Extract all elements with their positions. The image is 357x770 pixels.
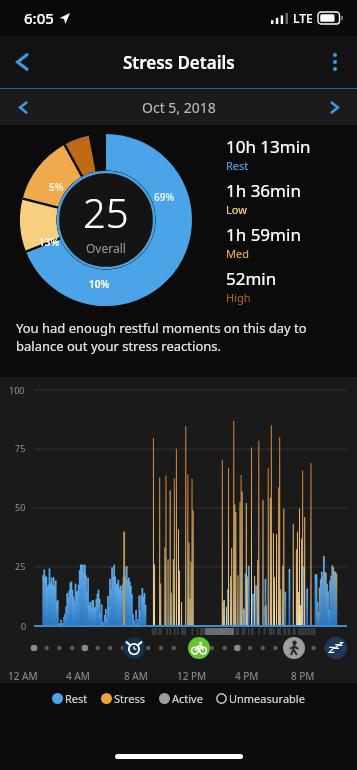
button[interactable]: Stress: [101, 691, 146, 706]
button[interactable]: Unmeasurable: [216, 691, 305, 706]
staticText: 50: [15, 501, 26, 513]
staticText: 13%: [39, 235, 60, 249]
staticText: Oct 5, 2018: [142, 98, 216, 117]
staticText: 25: [83, 185, 129, 239]
staticText: 12 AM: [8, 669, 38, 683]
button[interactable]: More options: [313, 36, 357, 88]
staticText: 8 PM: [291, 669, 315, 683]
staticText: 69%: [154, 190, 175, 204]
staticText: High: [226, 290, 251, 305]
staticText: 4 PM: [235, 669, 259, 683]
button[interactable]: Walking: [283, 637, 305, 659]
staticText: Low: [226, 202, 247, 217]
button[interactable]: Previous day: [0, 89, 46, 125]
staticText: 5%: [49, 180, 64, 194]
button[interactable]: Cycling: [188, 637, 210, 659]
button[interactable]: Next day: [311, 89, 357, 125]
staticText: 25: [15, 560, 26, 572]
staticText: 1h 59min: [226, 223, 301, 246]
staticText: Rest: [65, 691, 88, 706]
staticText: LTE: [293, 10, 313, 26]
staticText: 10h 13min: [226, 135, 311, 158]
staticText: 0: [21, 620, 27, 632]
staticText: 100: [9, 384, 25, 396]
staticText: 10%: [89, 277, 110, 291]
button[interactable]: Back: [0, 36, 46, 88]
staticText: 8 AM: [124, 669, 148, 683]
button[interactable]: Sleep: [325, 637, 347, 659]
button[interactable]: Active: [159, 691, 203, 706]
staticText: 52min: [226, 267, 277, 290]
staticText: 4 AM: [66, 669, 90, 683]
staticText: 12 PM: [177, 669, 207, 683]
button[interactable]: Alarm: [123, 637, 145, 659]
button[interactable]: Rest: [52, 691, 88, 706]
staticText: 75: [15, 442, 26, 454]
staticText: Overall: [86, 240, 126, 256]
staticText: Rest: [226, 158, 249, 173]
staticText: You had enough restful moments on this d…: [16, 319, 341, 355]
staticText: 6:05: [24, 8, 54, 28]
staticText: 1h 36min: [226, 179, 301, 202]
staticText: Med: [226, 246, 249, 261]
staticText: Unmeasurable: [229, 691, 305, 706]
staticText: Stress Details: [123, 51, 235, 74]
staticText: Stress: [114, 691, 146, 706]
staticText: Active: [172, 691, 203, 706]
